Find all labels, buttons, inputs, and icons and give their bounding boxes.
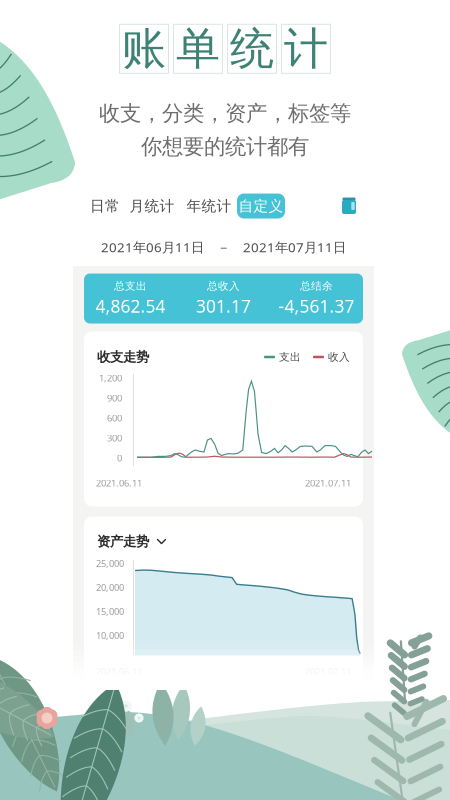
staticText: 账: [122, 22, 166, 76]
staticText: 15,000: [96, 605, 124, 618]
staticText: 4,862.54: [95, 294, 165, 317]
staticText: 2021.07.11: [305, 477, 351, 489]
staticText: 收支走势: [97, 349, 149, 365]
staticText: 300: [107, 432, 122, 444]
button[interactable]: 日常: [87, 193, 123, 218]
staticText: 2021年06月11日 － 2021年07月11日: [101, 238, 346, 256]
staticText: 1,200: [99, 372, 122, 384]
staticText: 2021.06.11: [96, 477, 142, 489]
button[interactable]: 年统计: [185, 193, 233, 218]
staticText: 单: [176, 22, 220, 76]
button[interactable]: 月统计: [128, 193, 176, 218]
staticText: 301.17: [196, 294, 251, 317]
staticText: 600: [107, 412, 122, 424]
staticText: 支出: [279, 350, 301, 363]
staticText: 收支，分类，资产，标签等: [99, 100, 351, 126]
staticText: 0: [117, 452, 122, 464]
button[interactable]: 账本: [336, 193, 362, 219]
staticText: 资产走势: [97, 533, 149, 550]
staticText: 日常: [90, 197, 120, 215]
staticText: 10,000: [96, 629, 124, 642]
staticText: 计: [284, 22, 328, 76]
staticText: 900: [107, 392, 122, 404]
staticText: 总收入: [207, 279, 240, 292]
staticText: 25,000: [96, 557, 124, 570]
staticText: 月统计: [129, 197, 174, 215]
staticText: 自定义: [238, 197, 283, 215]
staticText: 你想要的统计都有: [141, 133, 309, 160]
staticText: -4,561.37: [278, 294, 354, 317]
staticText: 年统计: [186, 197, 231, 215]
staticText: 总结余: [300, 279, 333, 292]
button[interactable]: 自定义: [237, 193, 285, 218]
staticText: 收入: [328, 350, 350, 363]
staticText: 统: [230, 22, 274, 76]
staticText: 总支出: [114, 279, 147, 292]
staticText: 20,000: [96, 581, 124, 594]
